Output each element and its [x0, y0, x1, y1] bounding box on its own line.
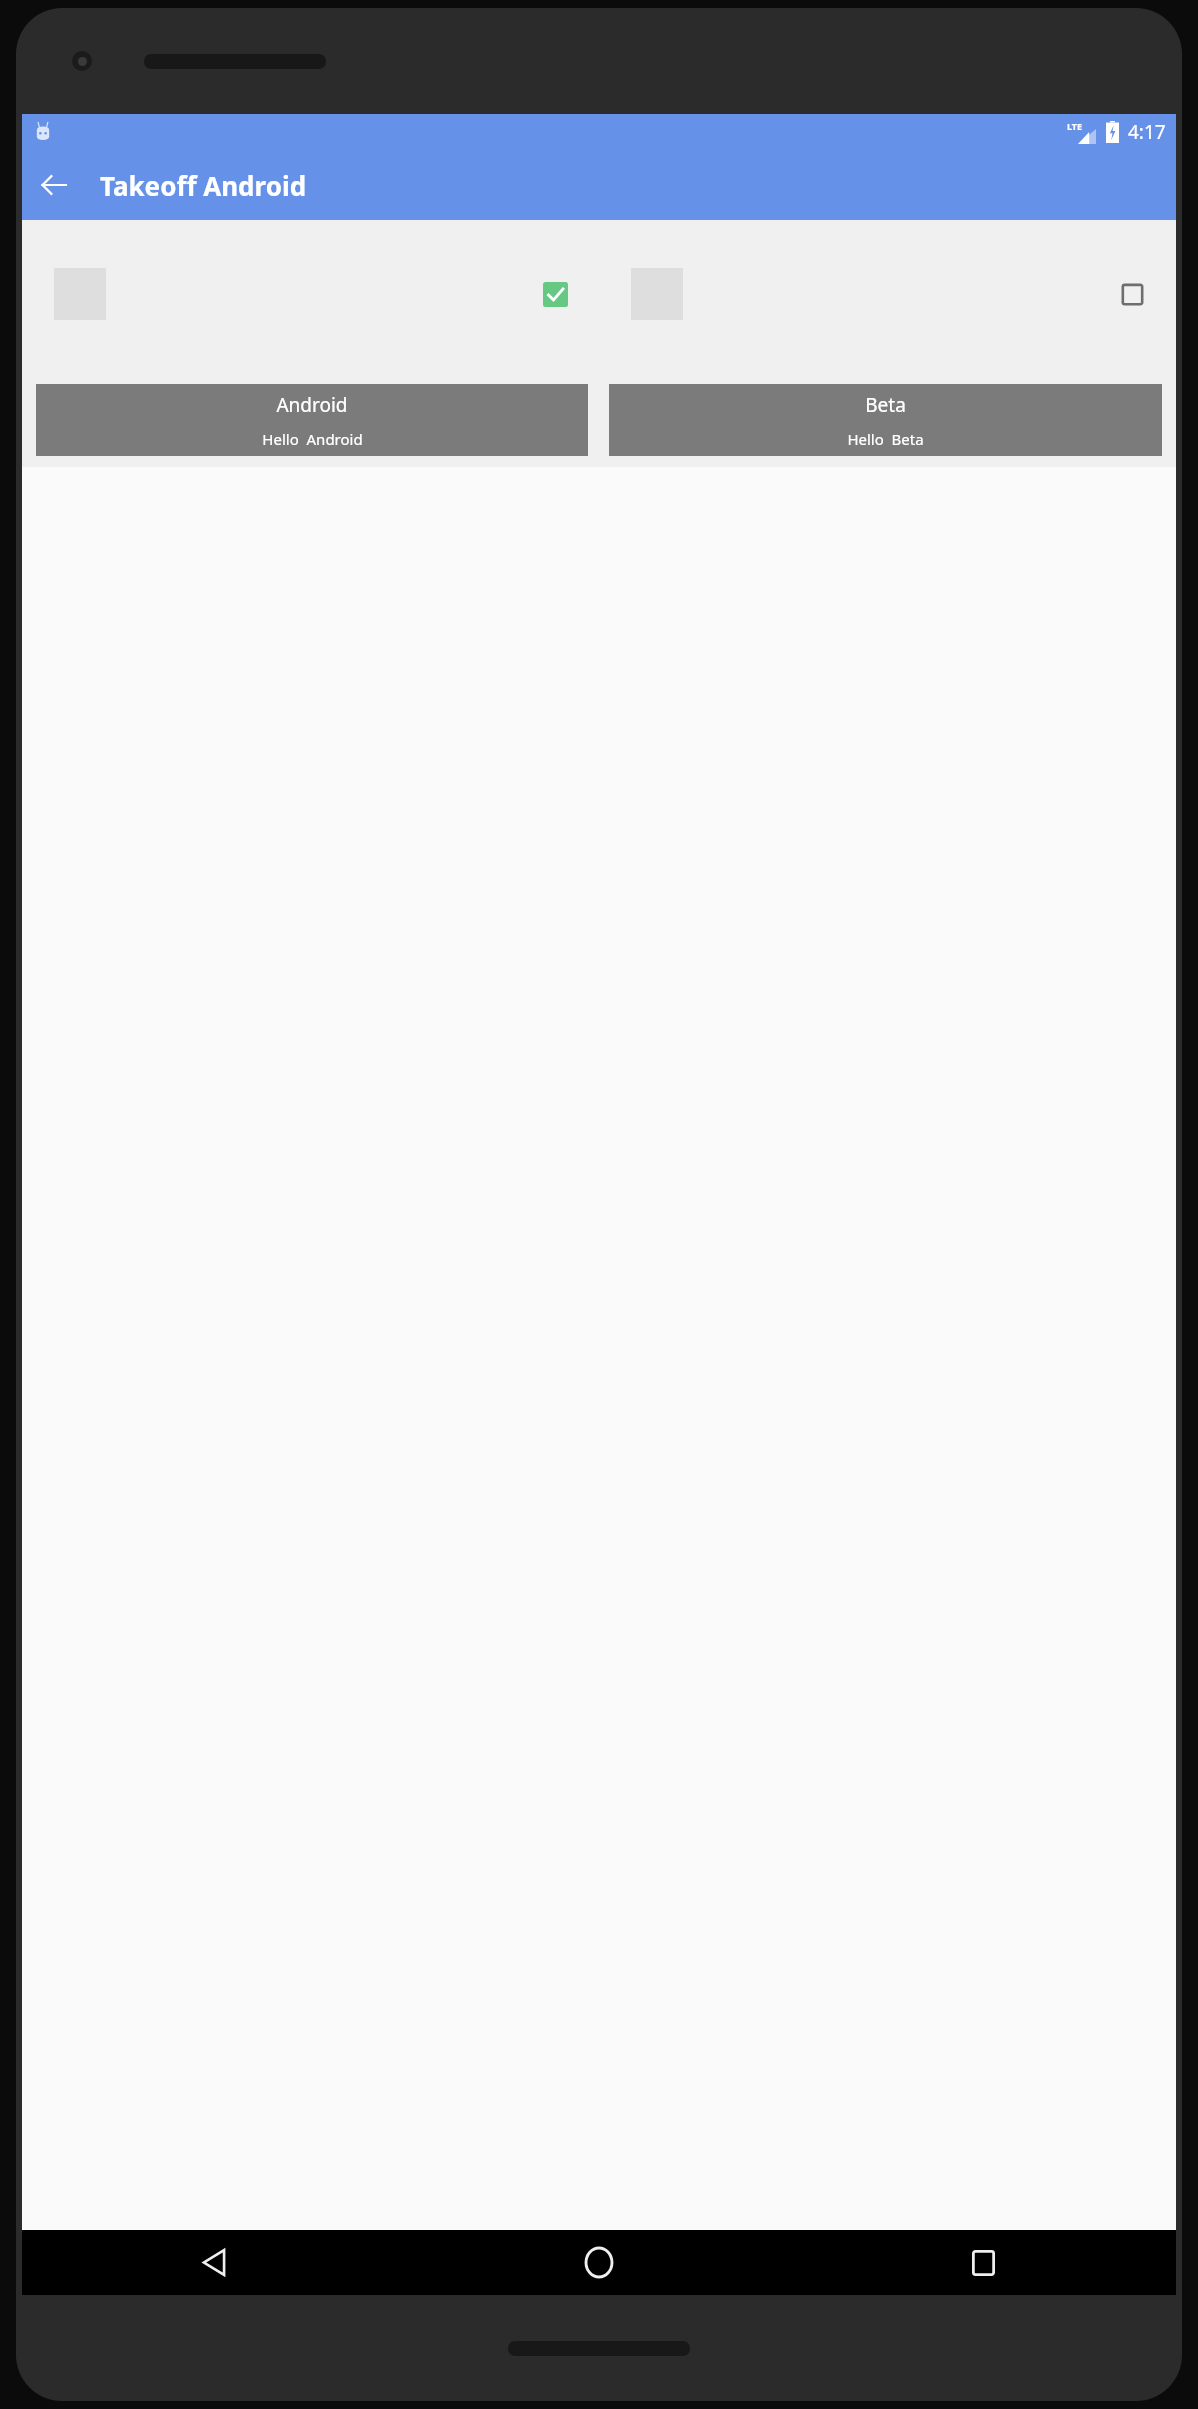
staticText: Beta	[865, 392, 906, 418]
button[interactable]: Back	[30, 161, 78, 209]
button[interactable]: Recent apps	[791, 2230, 1176, 2295]
staticText: Hello Beta	[847, 429, 924, 449]
button[interactable]: Beta	[609, 384, 1162, 456]
staticText: LTE	[1067, 120, 1083, 132]
button[interactable]: Back	[22, 2230, 406, 2295]
button[interactable]: Android	[36, 384, 588, 456]
button[interactable]: Checked	[533, 272, 577, 316]
staticText: Takeoff Android	[100, 168, 307, 203]
staticText: 4:17	[1128, 119, 1166, 145]
staticText: Hello Android	[262, 429, 363, 449]
staticText: Android	[276, 392, 348, 418]
button[interactable]: Home	[406, 2230, 791, 2295]
button[interactable]: Unchecked	[1110, 272, 1154, 316]
